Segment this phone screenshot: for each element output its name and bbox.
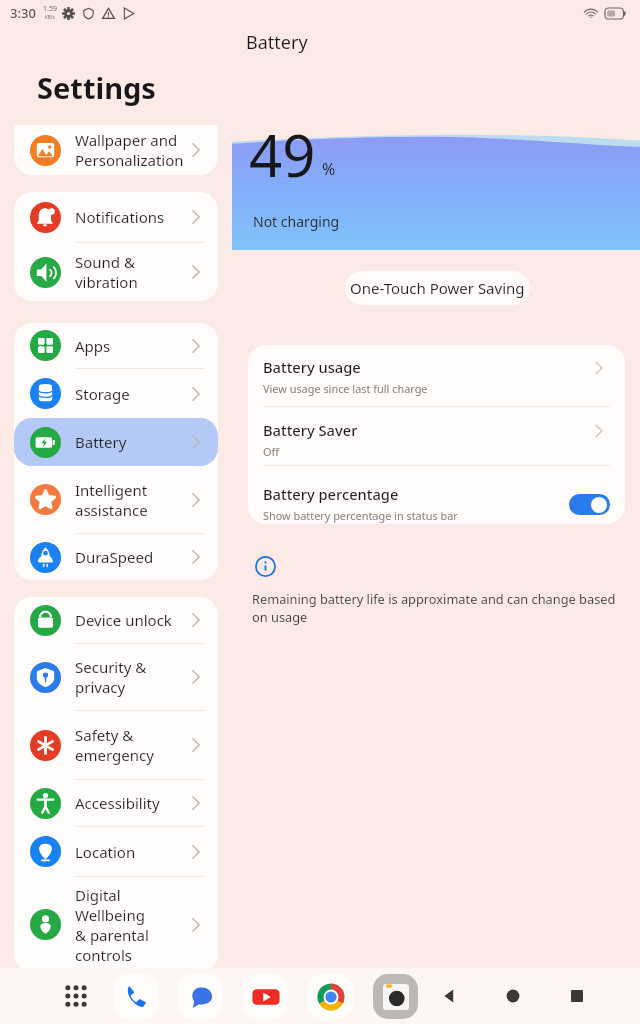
staticText: 1.59 [43, 4, 57, 14]
button[interactable]: Notifications [14, 192, 218, 242]
button[interactable]: All apps [55, 975, 97, 1017]
button[interactable]: Battery [14, 418, 218, 466]
button[interactable]: Recents [556, 975, 598, 1017]
staticText: Safety & emergency [75, 725, 184, 765]
staticText: KB/s [45, 14, 55, 20]
button[interactable]: Phone [113, 974, 158, 1019]
staticText: View usage since last full charge [263, 381, 428, 396]
staticText: Battery usage [263, 357, 361, 377]
button[interactable]: Chrome [308, 974, 353, 1019]
button[interactable]: Camera [373, 974, 418, 1019]
button[interactable]: Messages [178, 974, 223, 1019]
staticText: 3:30 [10, 4, 36, 22]
button[interactable]: Security & privacy [14, 644, 218, 710]
staticText: Battery percentage [263, 484, 399, 504]
staticText: Security & privacy [75, 657, 184, 697]
staticText: Location [75, 842, 184, 862]
button[interactable]: Back [429, 975, 471, 1017]
staticText: Settings [37, 68, 156, 107]
staticText: 49 [249, 115, 316, 194]
button[interactable]: One-Touch Power Saving [345, 271, 530, 305]
button[interactable]: Digital Wellbeing & parental controls [14, 877, 218, 972]
staticText: Device unlock [75, 610, 184, 630]
staticText: Battery [246, 30, 308, 55]
staticText: Apps [75, 336, 184, 356]
button[interactable]: Device unlock [14, 597, 218, 643]
button[interactable] [569, 494, 610, 515]
staticText: Remaining battery life is approximate an… [252, 590, 616, 626]
button[interactable]: Safety & emergency [14, 711, 218, 779]
button[interactable]: Apps [14, 323, 218, 368]
button[interactable]: Battery percentage [248, 466, 625, 524]
staticText: DuraSpeed [75, 547, 184, 567]
button[interactable]: Battery Saver [248, 407, 625, 465]
button[interactable]: Intelligent assistance [14, 466, 218, 533]
staticText: % [322, 158, 336, 180]
staticText: Digital Wellbeing & parental controls [75, 885, 184, 965]
staticText: Sound & vibration [75, 252, 184, 292]
button[interactable]: Sound & vibration [14, 243, 218, 301]
button[interactable]: YouTube [243, 974, 288, 1019]
staticText: Notifications [75, 207, 184, 227]
staticText: Accessibility [75, 793, 184, 813]
staticText: Wallpaper and Personalization [75, 130, 184, 170]
staticText: Off [263, 444, 279, 459]
button[interactable]: Storage [14, 369, 218, 418]
staticText: Battery Saver [263, 420, 358, 440]
button[interactable]: DuraSpeed [14, 534, 218, 580]
staticText: Intelligent assistance [75, 480, 184, 520]
button[interactable]: Location [14, 827, 218, 876]
staticText: One-Touch Power Saving [350, 278, 525, 298]
staticText: Storage [75, 384, 184, 404]
button[interactable]: Wallpaper and Personalization [14, 125, 218, 175]
button[interactable]: Battery usage [248, 345, 625, 406]
staticText: Show battery percentage in status bar [263, 508, 458, 523]
staticText: Battery [75, 432, 184, 452]
button[interactable]: Accessibility [14, 780, 218, 826]
staticText: Not charging [253, 212, 340, 231]
button[interactable]: Home [492, 975, 534, 1017]
